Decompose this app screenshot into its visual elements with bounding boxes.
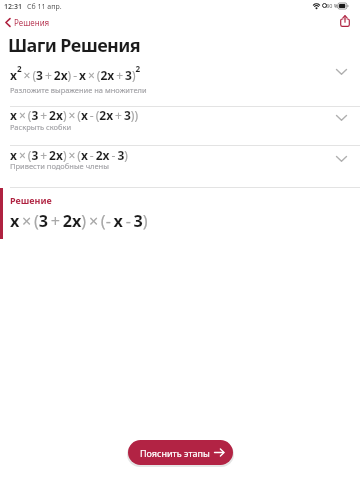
staticText: Сб 11 апр.	[27, 2, 62, 12]
button[interactable]	[340, 15, 350, 27]
staticText: x2 × (3 + 2x) - x × (2x + 3)2	[10, 63, 141, 83]
staticText: Решение	[10, 194, 52, 206]
staticText: 12:31	[4, 2, 22, 12]
button[interactable]: Пояснить этапы	[128, 440, 233, 465]
staticText: Шаги Решения	[8, 33, 141, 58]
staticText: Раскрыть скобки	[10, 122, 72, 132]
button[interactable]: Решения	[5, 17, 50, 27]
staticText: Решения	[14, 17, 50, 27]
staticText: x × (3 + 2x) × (x - (2x + 3))	[10, 107, 139, 123]
staticText: Разложите выражение на множители	[10, 85, 147, 95]
staticText: Привести подобные члены	[10, 161, 109, 171]
button[interactable]	[0, 58, 360, 106]
staticText: x × (3 + 2x) × (x - 2x - 3)	[10, 147, 128, 163]
staticText: x × (3 + 2x) × (- x - 3)	[10, 210, 148, 232]
staticText: Пояснить этапы	[140, 447, 210, 459]
button[interactable]	[0, 146, 360, 187]
staticText: 80 %	[326, 2, 339, 9]
button[interactable]	[0, 107, 360, 145]
